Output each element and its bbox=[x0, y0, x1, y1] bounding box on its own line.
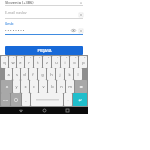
staticText: , bbox=[25, 97, 27, 102]
button[interactable]: 4 bbox=[25, 56, 33, 68]
button[interactable]: Geslo bbox=[5, 22, 83, 35]
button[interactable]: Emoji bbox=[11, 93, 21, 106]
button[interactable]: Shift bbox=[1, 80, 12, 93]
button[interactable]: Home bbox=[41, 107, 48, 114]
staticText: . bbox=[67, 97, 69, 102]
staticText: g bbox=[41, 72, 44, 77]
staticText: 5 bbox=[39, 56, 41, 59]
staticText: s bbox=[16, 72, 18, 77]
staticText: 6 bbox=[48, 56, 50, 59]
button[interactable]: 9 bbox=[70, 56, 78, 68]
staticText: i bbox=[64, 60, 66, 65]
staticText: b bbox=[51, 84, 54, 89]
button[interactable]: 6 bbox=[43, 56, 51, 68]
button[interactable]: E-mail naslov bbox=[5, 9, 83, 19]
staticText: 7 bbox=[57, 56, 59, 59]
staticText: j bbox=[59, 72, 61, 77]
button[interactable]: 2 bbox=[9, 56, 16, 68]
button[interactable]: Enter bbox=[73, 93, 87, 106]
staticText: 9 bbox=[75, 56, 77, 59]
staticText: o bbox=[73, 60, 76, 65]
button[interactable]: k bbox=[65, 68, 73, 80]
button[interactable]: 1 bbox=[1, 56, 8, 68]
other: Open dropdown bbox=[79, 1, 83, 5]
button[interactable]: f bbox=[29, 68, 37, 80]
button[interactable]: l bbox=[74, 68, 82, 80]
staticText: E-mail naslov bbox=[5, 10, 27, 15]
staticText: 8 bbox=[66, 56, 68, 59]
staticText: m bbox=[68, 84, 72, 89]
button[interactable]: a bbox=[5, 68, 12, 80]
staticText: t bbox=[37, 60, 39, 65]
staticText: 4 bbox=[30, 56, 32, 59]
button[interactable]: m bbox=[66, 80, 74, 93]
button[interactable]: 5 bbox=[34, 56, 42, 68]
button[interactable]: s bbox=[13, 68, 20, 80]
button[interactable]: d bbox=[21, 68, 28, 80]
staticText: e bbox=[19, 60, 22, 65]
button[interactable]: b bbox=[48, 80, 56, 93]
button[interactable]: Show password bbox=[71, 28, 76, 33]
button[interactable]: v bbox=[39, 80, 47, 93]
button[interactable]: n bbox=[57, 80, 65, 93]
staticText: k bbox=[68, 72, 71, 77]
staticText: c bbox=[33, 84, 35, 89]
button[interactable]: Space bbox=[31, 93, 63, 106]
button[interactable]: 3 bbox=[17, 56, 24, 68]
button[interactable]: c bbox=[30, 80, 38, 93]
staticText: l bbox=[77, 72, 79, 77]
button[interactable]: 8 bbox=[61, 56, 69, 68]
staticText: q bbox=[3, 60, 6, 65]
button[interactable]: y bbox=[13, 80, 20, 93]
button[interactable]: x bbox=[21, 80, 29, 93]
button[interactable]: . bbox=[64, 93, 72, 106]
button[interactable]: j bbox=[56, 68, 64, 80]
button[interactable]: h bbox=[47, 68, 55, 80]
staticText: a bbox=[7, 72, 10, 77]
staticText: p bbox=[82, 60, 85, 65]
staticText: • • • • • • • • bbox=[5, 28, 71, 33]
staticText: Slovenia (+386) bbox=[5, 0, 79, 5]
button[interactable]: PRIJAVA bbox=[5, 46, 83, 55]
button[interactable]: Clear e-mail bbox=[79, 13, 83, 17]
button[interactable]: Backspace bbox=[75, 80, 87, 93]
staticText: 1 bbox=[5, 56, 7, 59]
staticText: u bbox=[55, 60, 58, 65]
button[interactable]: Slovenia (+386) bbox=[5, 0, 83, 6]
staticText: 2 bbox=[13, 56, 15, 59]
staticText: PRIJAVA bbox=[37, 48, 52, 53]
button[interactable]: , bbox=[22, 93, 30, 106]
staticText: r bbox=[28, 60, 30, 65]
staticText: z bbox=[46, 60, 48, 65]
staticText: 0 bbox=[84, 56, 86, 59]
button[interactable]: Back bbox=[17, 107, 24, 114]
staticText: h bbox=[50, 72, 53, 77]
staticText: x bbox=[24, 84, 27, 89]
staticText: v bbox=[42, 84, 45, 89]
staticText: n bbox=[60, 84, 63, 89]
staticText: 3 bbox=[21, 56, 23, 59]
staticText: y bbox=[15, 84, 18, 89]
button[interactable]: 0 bbox=[79, 56, 87, 68]
button[interactable]: g bbox=[38, 68, 46, 80]
staticText: Geslo bbox=[5, 22, 14, 26]
button[interactable]: Clear password bbox=[79, 29, 83, 33]
staticText: ?123 bbox=[3, 98, 9, 101]
button[interactable]: Symbols bbox=[1, 93, 10, 106]
staticText: d bbox=[23, 72, 26, 77]
button[interactable]: Recent apps bbox=[64, 107, 71, 114]
button[interactable]: 7 bbox=[52, 56, 60, 68]
staticText: w bbox=[11, 60, 15, 65]
staticText: f bbox=[32, 72, 34, 77]
